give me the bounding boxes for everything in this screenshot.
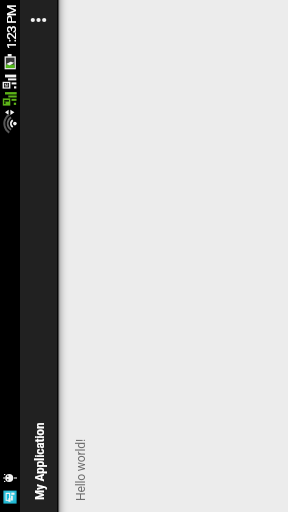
staticText: 1:23 PM: [3, 5, 19, 49]
button[interactable]: More options: [20, 0, 57, 39]
staticText: Hello world!: [74, 439, 88, 501]
button[interactable]: My Application: [27, 280, 51, 500]
other: Status icons: [0, 0, 20, 512]
staticText: My Application: [31, 422, 47, 500]
